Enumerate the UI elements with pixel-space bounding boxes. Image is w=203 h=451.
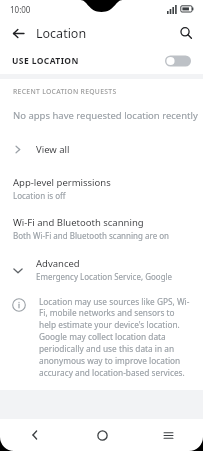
button[interactable]: Back [4,19,32,47]
staticText: App-level permissions [13,176,111,189]
staticText: RECENT LOCATION REQUESTS [13,87,117,96]
button[interactable]: App-level permissions [0,176,203,201]
staticText: Both Wi-Fi and Bluetooth scanning are on [13,230,170,241]
button[interactable]: Advanced [0,257,203,282]
staticText: View all [36,143,70,156]
button[interactable]: Wi-Fi and Bluetooth scanning [0,216,203,241]
button[interactable]: Recent apps [153,420,183,450]
button[interactable]: Search [172,19,200,47]
staticText: USE LOCATION [12,55,165,67]
button[interactable]: Home [87,420,117,450]
button[interactable]: Back [20,420,50,450]
staticText: Location is off [13,190,66,201]
staticText: Location [36,25,87,42]
staticText: No apps have requested location recently [13,109,198,122]
staticText: Location may use sources like GPS, Wi-Fi… [39,296,193,378]
button[interactable]: USE LOCATION [0,48,203,74]
staticText: Wi-Fi and Bluetooth scanning [13,216,144,229]
staticText: Emergency Location Service, Google Locat… [36,271,193,282]
button[interactable]: View all [0,138,203,160]
staticText: Advanced [36,257,80,270]
staticText: 10:00 [10,4,31,15]
